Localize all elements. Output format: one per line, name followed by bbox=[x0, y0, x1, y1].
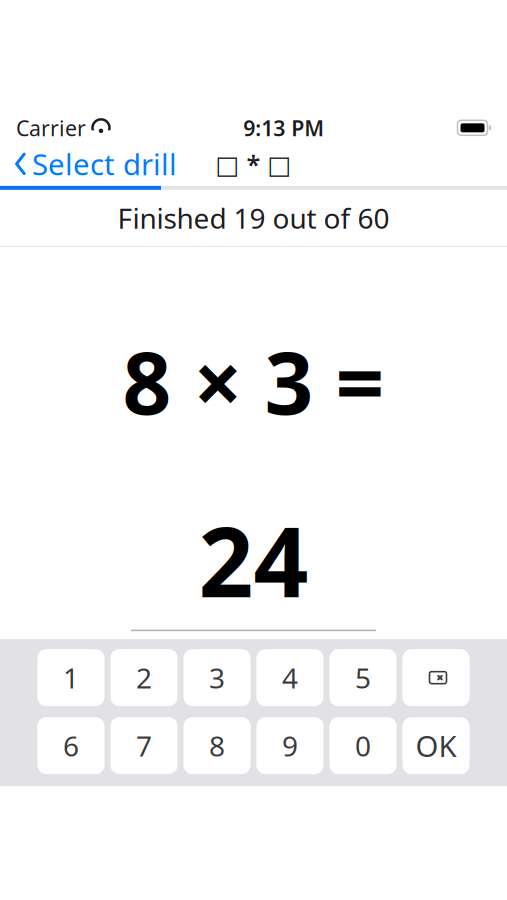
button[interactable]: 0 bbox=[329, 717, 396, 774]
staticText: 5 bbox=[355, 659, 371, 696]
staticText: 9:13 PM bbox=[243, 114, 324, 142]
button[interactable]: 2 bbox=[110, 649, 177, 706]
button[interactable]: 8 bbox=[183, 717, 250, 774]
staticText: 9 bbox=[282, 727, 298, 764]
staticText: OK bbox=[415, 726, 456, 765]
button[interactable]: OK bbox=[402, 717, 469, 774]
staticText: Carrier bbox=[16, 114, 86, 142]
button[interactable]: 6 bbox=[37, 717, 104, 774]
staticText: 4 bbox=[282, 659, 298, 696]
button[interactable]: 5 bbox=[329, 649, 396, 706]
staticText: Finished 19 out of 60 bbox=[117, 199, 389, 236]
button[interactable]: 7 bbox=[110, 717, 177, 774]
button[interactable]: 4 bbox=[256, 649, 323, 706]
staticText: 0 bbox=[355, 727, 371, 764]
staticText: 3 bbox=[209, 659, 225, 696]
staticText: □ * □ bbox=[215, 147, 291, 181]
button[interactable]: 3 bbox=[183, 649, 250, 706]
staticText: 24 bbox=[198, 496, 308, 624]
staticText: 6 bbox=[63, 727, 79, 764]
staticText: 8 bbox=[209, 727, 225, 764]
button[interactable]: Select drill bbox=[0, 138, 177, 189]
staticText: Select drill bbox=[32, 144, 177, 183]
staticText: 8 × 3 = bbox=[122, 325, 384, 438]
button[interactable]: 9 bbox=[256, 717, 323, 774]
staticText: 7 bbox=[136, 727, 152, 764]
button[interactable]: Delete bbox=[402, 649, 469, 706]
button[interactable]: 1 bbox=[37, 649, 104, 706]
staticText: 2 bbox=[136, 659, 152, 696]
staticText: 1 bbox=[63, 659, 79, 696]
